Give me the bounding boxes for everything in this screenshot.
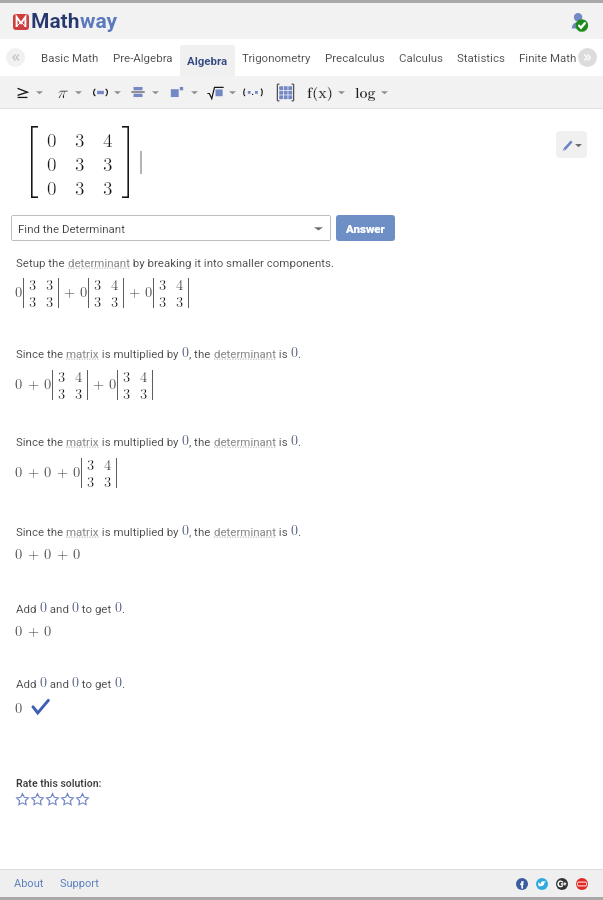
- button[interactable]: Radical: [205, 82, 225, 102]
- staticText: .: [122, 677, 126, 690]
- button[interactable]: Precalculus: [318, 39, 392, 76]
- button[interactable]: Scroll tabs left: [6, 48, 25, 67]
- staticText: 3: [103, 174, 113, 198]
- staticText: 0: [72, 671, 79, 691]
- button[interactable]: About: [14, 877, 44, 890]
- staticText: 0: [47, 150, 57, 174]
- staticText: 0: [44, 461, 52, 482]
- staticText: 3: [75, 150, 85, 174]
- staticText: +: [57, 461, 69, 482]
- button[interactable]: YouTube: [576, 878, 588, 890]
- staticText: 0: [73, 461, 81, 482]
- button[interactable]: Account: [568, 11, 589, 32]
- staticText: 0: [40, 671, 47, 691]
- staticText: 0: [291, 429, 298, 449]
- staticText: 0: [182, 519, 189, 539]
- staticText: 3: [104, 471, 112, 488]
- staticText: 3: [75, 174, 85, 198]
- staticText: +: [28, 461, 40, 482]
- staticText: by breaking it into smaller components.: [130, 256, 334, 269]
- staticText: determinant: [214, 435, 276, 448]
- staticText: 3: [58, 383, 66, 400]
- staticText: Finite Math: [519, 51, 577, 64]
- staticText: 3: [46, 291, 54, 308]
- button[interactable]: Matrix: [275, 82, 295, 102]
- button[interactable]: Greek letters: [51, 82, 71, 102]
- staticText: 0: [15, 373, 23, 394]
- staticText: 0: [145, 281, 153, 302]
- staticText: matrix: [66, 435, 99, 448]
- button[interactable]: Exponent: [167, 82, 187, 102]
- button[interactable]: Rate 2 stars: [31, 793, 44, 806]
- button[interactable]: Trigonometry: [235, 39, 318, 76]
- staticText: matrix: [66, 525, 99, 538]
- staticText: Calculus: [399, 51, 443, 64]
- button[interactable]: Parentheses: [90, 82, 110, 102]
- button[interactable]: Share on Facebook: [516, 878, 528, 890]
- staticText: Since the: [16, 435, 66, 448]
- button[interactable]: Find the Determinant: [11, 215, 331, 241]
- button[interactable]: Finite Math: [512, 39, 584, 76]
- staticText: .: [298, 347, 302, 360]
- staticText: way: [80, 9, 118, 34]
- staticText: is: [276, 347, 291, 360]
- staticText: 3: [46, 274, 54, 291]
- staticText: 0: [47, 126, 57, 150]
- staticText: , the: [189, 525, 214, 538]
- button[interactable]: Rate 4 stars: [61, 793, 74, 806]
- staticText: Math: [31, 9, 80, 34]
- staticText: log: [355, 82, 376, 102]
- button[interactable]: Scroll tabs right: [578, 48, 597, 67]
- staticText: 3: [111, 291, 119, 308]
- staticText: 0: [291, 341, 298, 361]
- staticText: is multiplied by: [99, 435, 182, 448]
- staticText: 4: [111, 274, 119, 291]
- button[interactable]: Rate 5 stars: [76, 793, 89, 806]
- button[interactable]: f(x): [306, 82, 334, 102]
- staticText: 0: [47, 174, 57, 198]
- staticText: +: [93, 373, 105, 394]
- staticText: 3: [94, 291, 102, 308]
- button[interactable]: Edit: [556, 131, 587, 158]
- staticText: determinant: [68, 256, 130, 269]
- staticText: Pre-Algebra: [113, 51, 173, 64]
- button[interactable]: Statistics: [450, 39, 512, 76]
- staticText: 0: [15, 543, 23, 564]
- button[interactable]: Answer: [336, 215, 395, 241]
- staticText: 4: [140, 366, 148, 383]
- button[interactable]: log: [354, 82, 377, 102]
- staticText: +: [28, 620, 40, 641]
- button[interactable]: Fraction: [128, 82, 148, 102]
- button[interactable]: Share on Google Plus: [556, 878, 568, 890]
- button[interactable]: Support: [60, 877, 99, 890]
- staticText: +: [28, 543, 40, 564]
- button[interactable]: Rate 1 stars: [16, 793, 29, 806]
- staticText: 3: [123, 366, 131, 383]
- staticText: 3: [123, 383, 131, 400]
- staticText: Add: [16, 602, 40, 615]
- staticText: 0: [182, 429, 189, 449]
- staticText: Add: [16, 677, 40, 690]
- button[interactable]: Rate 3 stars: [46, 793, 59, 806]
- staticText: π: [56, 84, 66, 101]
- staticText: is multiplied by: [99, 347, 182, 360]
- staticText: , the: [189, 347, 214, 360]
- button[interactable]: Pre-Algebra: [106, 39, 180, 76]
- staticText: , the: [189, 435, 214, 448]
- staticText: 0: [80, 281, 88, 302]
- staticText: Trigonometry: [242, 51, 311, 64]
- button[interactable]: Calculus: [392, 39, 450, 76]
- staticText: 0: [44, 373, 52, 394]
- staticText: 0: [72, 596, 79, 616]
- button[interactable]: Ordered pair: [243, 82, 263, 102]
- staticText: Support: [60, 877, 99, 890]
- staticText: 3: [29, 291, 37, 308]
- staticText: 3: [140, 383, 148, 400]
- button[interactable]: Share on Twitter: [536, 878, 548, 890]
- button[interactable]: Basic Math: [34, 39, 106, 76]
- staticText: +: [28, 373, 40, 394]
- button[interactable]: Algebra: [180, 45, 235, 76]
- staticText: is: [276, 435, 291, 448]
- button[interactable]: Inequality: [12, 82, 32, 102]
- staticText: is: [276, 525, 291, 538]
